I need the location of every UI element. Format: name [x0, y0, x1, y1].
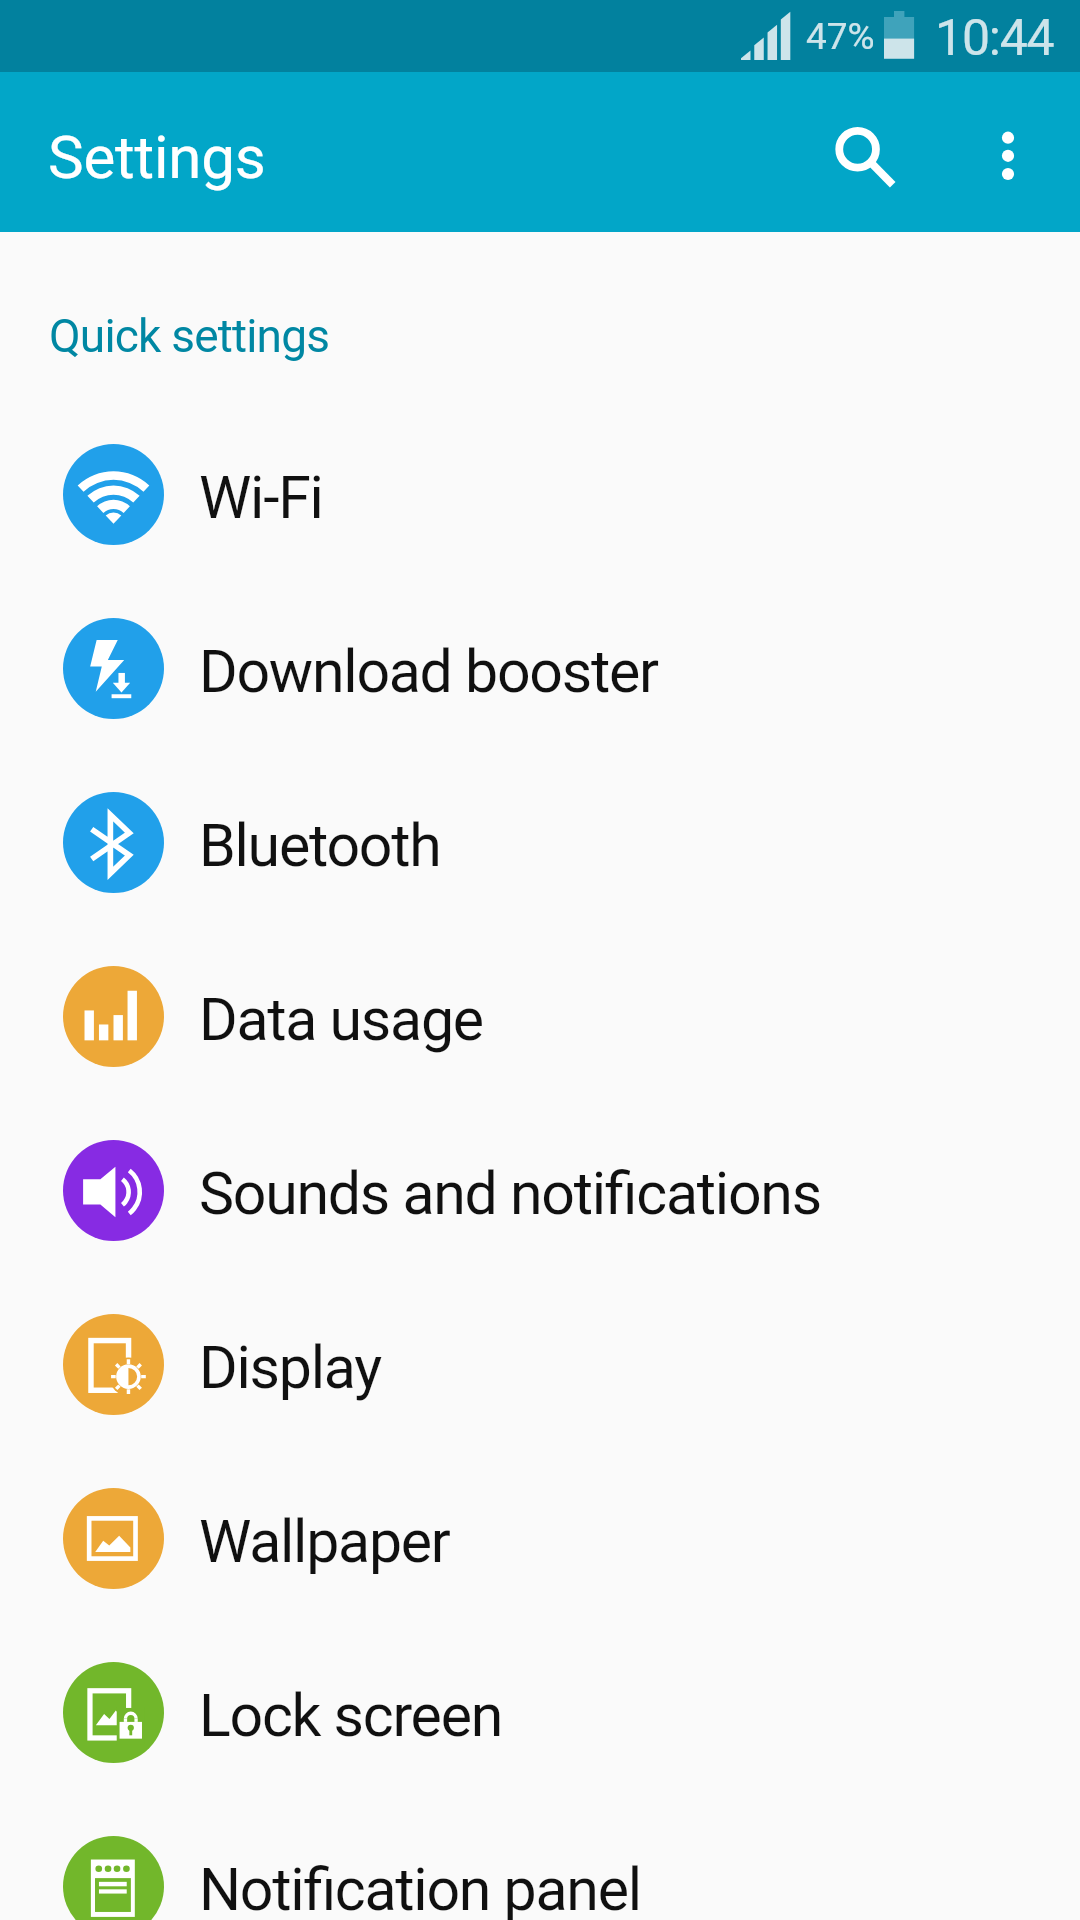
button[interactable]: Wallpaper [0, 1451, 1080, 1625]
button[interactable]: Search [809, 79, 906, 225]
button[interactable]: Wi-Fi [0, 407, 1080, 581]
button[interactable]: Bluetooth [0, 755, 1080, 929]
staticText: Data usage [199, 985, 483, 1054]
staticText: Display [199, 1333, 381, 1402]
staticText: 47% [806, 15, 875, 58]
staticText: Quick settings [49, 309, 330, 363]
staticText: Lock screen [199, 1681, 503, 1750]
staticText: Sounds and notifications [199, 1159, 821, 1228]
staticText: Download booster [199, 637, 658, 706]
button[interactable]: Notification panel [0, 1799, 1080, 1920]
button[interactable]: Lock screen [0, 1625, 1080, 1799]
button[interactable]: Data usage [0, 929, 1080, 1103]
button[interactable]: Display [0, 1277, 1080, 1451]
button[interactable]: More options [960, 79, 1056, 225]
staticText: Wallpaper [199, 1507, 450, 1576]
staticText: Bluetooth [199, 811, 441, 880]
staticText: Settings [48, 122, 266, 192]
staticText: Notification panel [199, 1855, 641, 1920]
staticText: 10:44 [935, 9, 1054, 68]
button[interactable]: Sounds and notifications [0, 1103, 1080, 1277]
button[interactable]: Download booster [0, 581, 1080, 755]
staticText: Wi-Fi [199, 463, 323, 532]
